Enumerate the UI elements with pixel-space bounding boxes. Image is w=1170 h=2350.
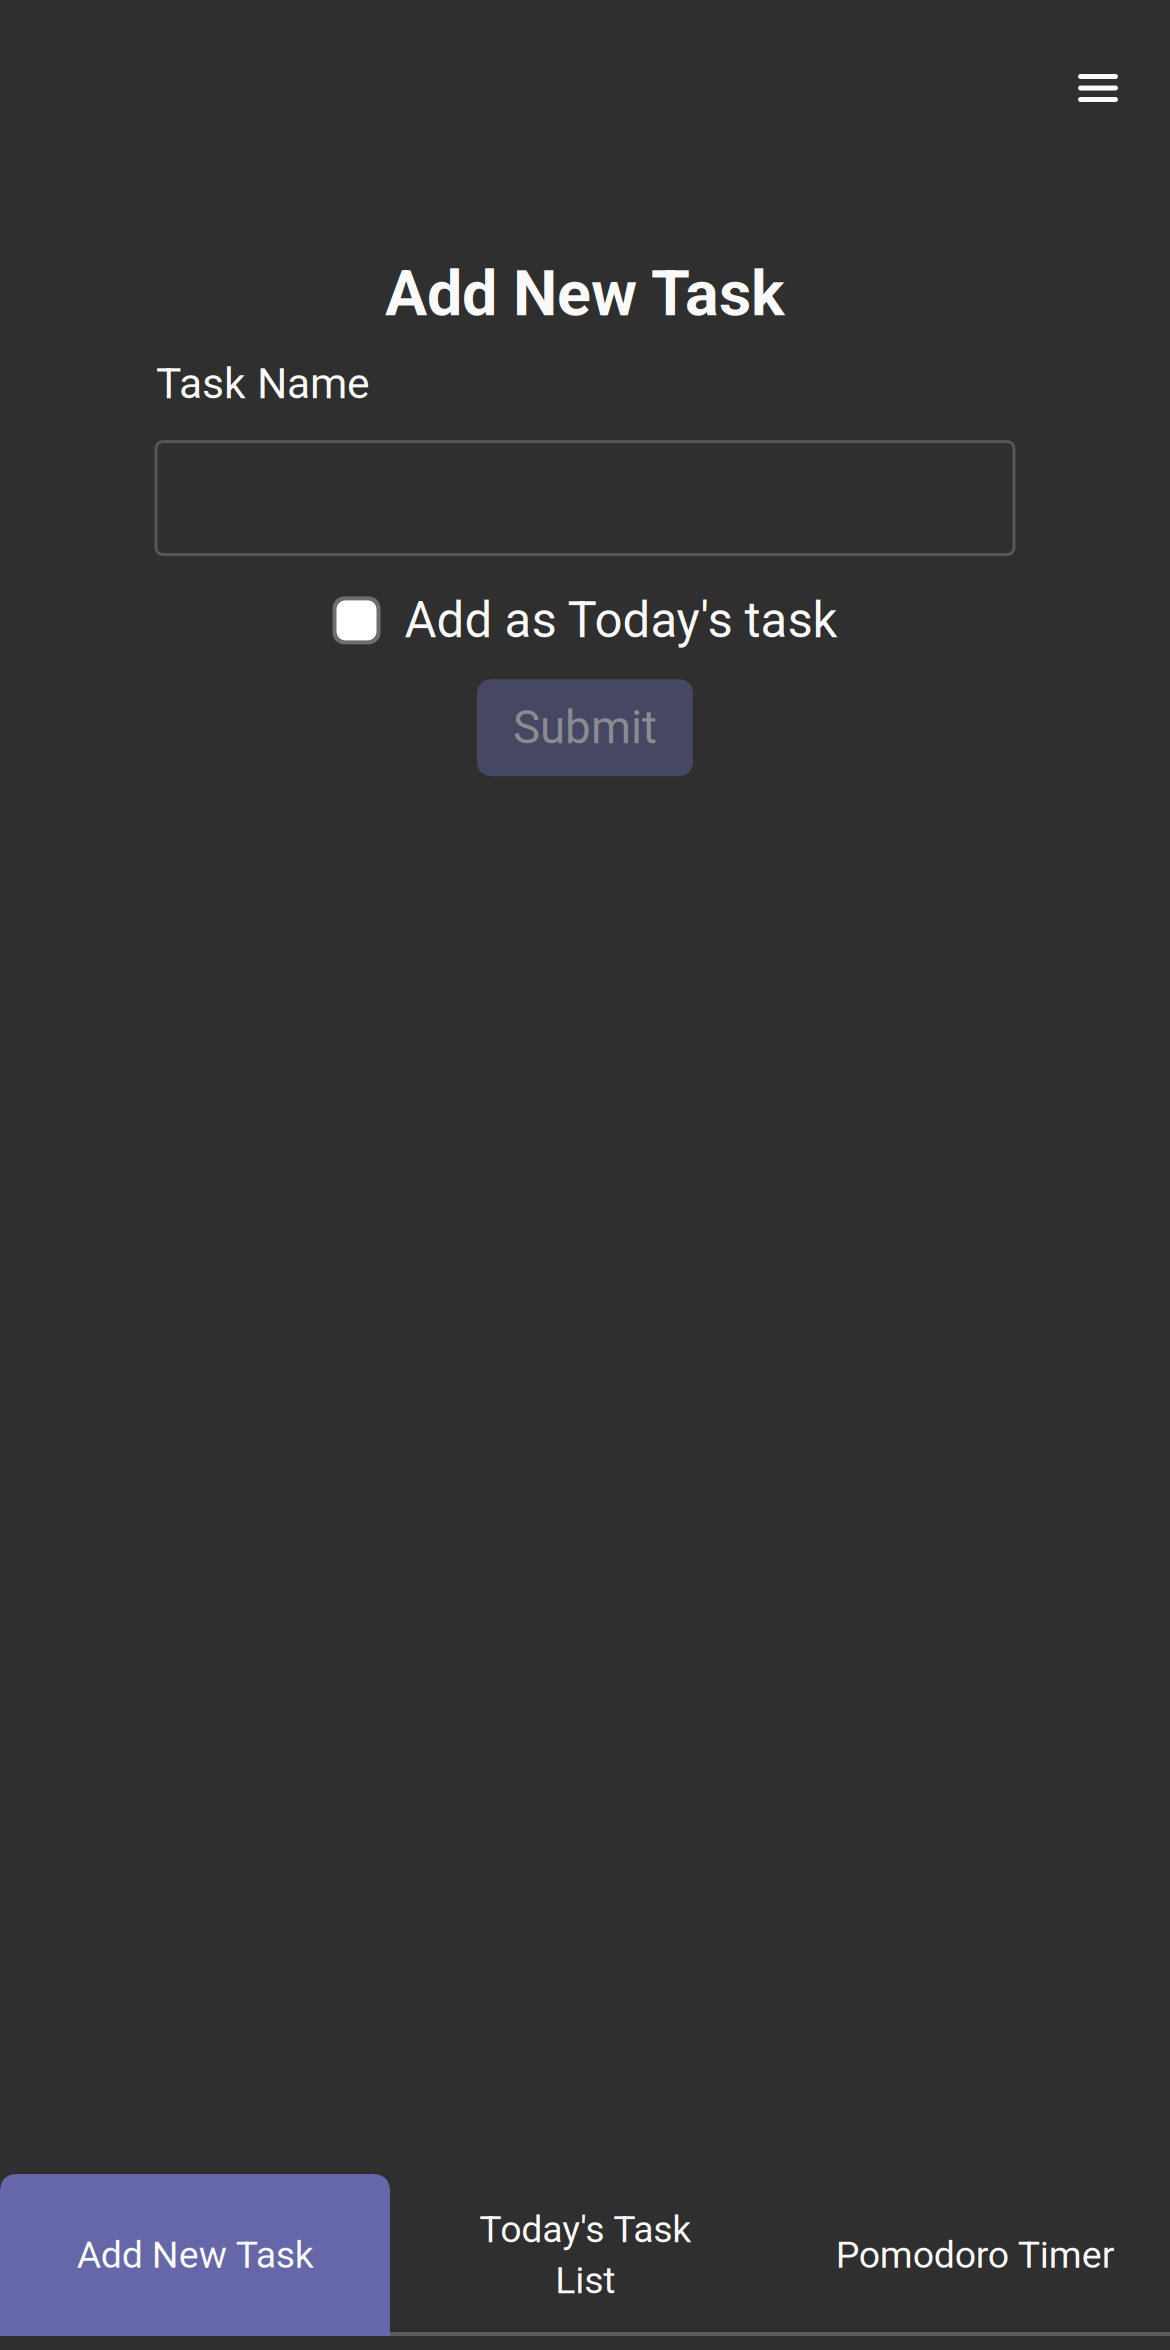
staticText: Add New Task [76, 2233, 313, 2277]
button[interactable]: Menu [1056, 52, 1170, 124]
button[interactable]: Task name text field [156, 442, 1014, 555]
staticText: Add as Today's task [404, 592, 837, 649]
button[interactable]: Add as Today's task [332, 592, 837, 649]
button[interactable]: Pomodoro Timer [780, 2174, 1170, 2336]
staticText: Task Name [156, 359, 370, 409]
staticText: Today's Task List [479, 2207, 691, 2302]
staticText: Submit [513, 701, 657, 754]
button[interactable]: Add New Task [0, 2174, 390, 2336]
staticText: Pomodoro Timer [835, 2233, 1114, 2277]
button[interactable]: Submit [477, 679, 693, 776]
staticText: Add New Task [385, 257, 785, 331]
button[interactable]: Today's Task List [390, 2174, 780, 2336]
